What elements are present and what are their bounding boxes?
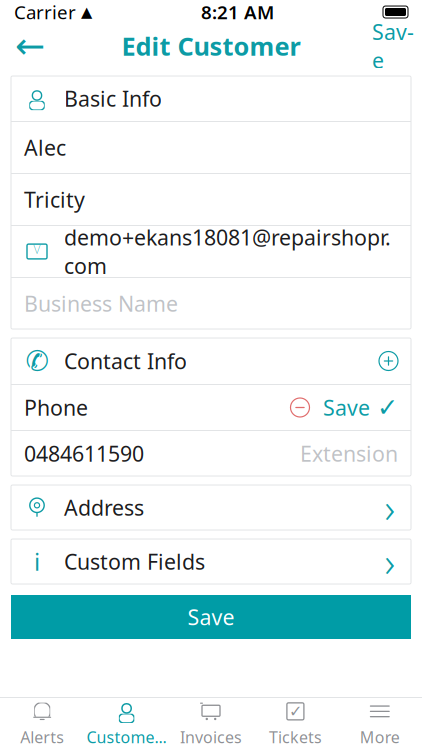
button[interactable]: Basic Info (11, 76, 411, 121)
button[interactable]: Invoices (169, 698, 253, 750)
staticText: Alerts (20, 726, 64, 748)
staticText: Custom Fields (64, 547, 205, 576)
staticText: ← (15, 26, 45, 66)
staticText: Tricity (24, 185, 85, 214)
staticText: › (384, 535, 395, 588)
button[interactable]: More (338, 698, 422, 750)
button[interactable]: ✓ (253, 698, 338, 750)
staticText: Edit Customer (121, 29, 300, 63)
button[interactable]: Save (370, 24, 414, 68)
staticText: Save (372, 18, 414, 74)
staticText: 0484611590 (24, 439, 144, 468)
button[interactable]: Back (8, 24, 52, 68)
button[interactable]: Remove phone (283, 387, 317, 427)
staticText: Phone (24, 393, 88, 422)
staticText: Save (323, 393, 370, 422)
staticText: 8:21 AM (201, 0, 274, 24)
staticText: ✓ (289, 702, 302, 720)
button[interactable]: Save (317, 387, 398, 427)
staticText: More (360, 726, 400, 748)
staticText: Business Name (24, 289, 178, 318)
staticText: ✓ (377, 393, 398, 422)
button[interactable]: Add contact (364, 341, 398, 381)
staticText: Tickets (269, 726, 322, 748)
staticText: Contact Info (64, 347, 187, 375)
staticText: Carrier (14, 0, 76, 24)
staticText: Extension (300, 439, 398, 468)
staticText: demo+ekans18081@repairshopr.com (64, 223, 391, 280)
staticText: v (33, 237, 40, 258)
staticText: Custome... (87, 726, 167, 748)
button[interactable]: Alerts (0, 698, 84, 750)
staticText: i (34, 546, 40, 577)
staticText: Basic Info (64, 84, 162, 113)
staticText: › (384, 481, 395, 534)
staticText: Alec (24, 133, 66, 162)
button[interactable]: Save (11, 595, 411, 639)
staticText: Save (187, 603, 234, 631)
staticText: ✆ (25, 345, 48, 377)
button[interactable]: Custome... (84, 698, 169, 750)
button[interactable]: i (11, 539, 411, 584)
staticText: Invoices (180, 726, 242, 748)
button[interactable]: Address (11, 485, 411, 530)
staticText: Address (64, 493, 144, 522)
staticText: ▲ (81, 4, 92, 20)
